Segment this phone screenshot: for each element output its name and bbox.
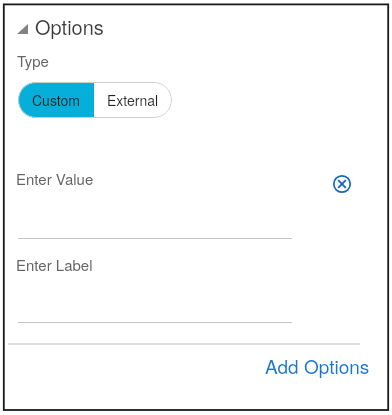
button[interactable]: Custom bbox=[18, 82, 94, 118]
staticText: Add Options bbox=[265, 352, 370, 379]
button[interactable] bbox=[331, 173, 353, 195]
staticText: Enter Value bbox=[16, 168, 94, 189]
staticText: Custom bbox=[32, 90, 81, 110]
staticText: External bbox=[107, 90, 159, 110]
button[interactable]: Add Options bbox=[255, 350, 360, 377]
staticText: Enter Label bbox=[16, 254, 93, 275]
staticText: Type bbox=[17, 50, 49, 71]
staticText: Options bbox=[35, 12, 104, 41]
button[interactable]: External bbox=[94, 82, 172, 118]
